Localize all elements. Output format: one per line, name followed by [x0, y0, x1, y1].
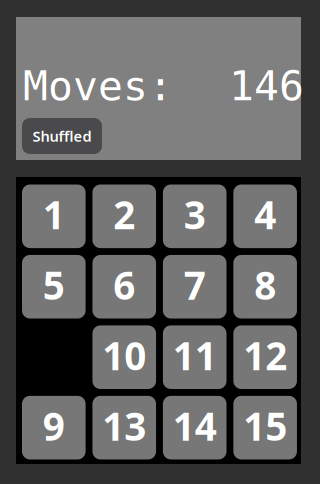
staticText: Shuffled	[32, 126, 91, 146]
staticText: 14	[173, 400, 217, 451]
staticText: 5	[43, 259, 65, 310]
button[interactable]: 12	[233, 325, 297, 389]
button[interactable]: 1	[22, 184, 86, 248]
staticText: 11	[173, 329, 217, 381]
button[interactable]: Shuffled	[22, 118, 102, 154]
staticText: 3	[184, 189, 206, 240]
staticText: 13	[102, 400, 146, 451]
staticText: 6	[113, 259, 135, 310]
button[interactable]: 5	[22, 255, 86, 318]
button[interactable]: 4	[233, 184, 297, 248]
button[interactable]: 2	[92, 184, 156, 248]
staticText: Moves:	[23, 62, 173, 109]
button[interactable]: 3	[163, 184, 226, 248]
button[interactable]: 15	[233, 396, 297, 459]
staticText: 10	[102, 329, 146, 381]
button[interactable]: 7	[163, 255, 226, 318]
staticText: 2	[113, 189, 135, 240]
staticText: 4	[254, 189, 276, 240]
staticText: 12	[243, 329, 287, 381]
button[interactable]: 8	[233, 255, 297, 318]
staticText: 15	[243, 400, 287, 451]
staticText: 7	[184, 259, 206, 310]
staticText: 146	[229, 62, 304, 109]
staticText: 1	[43, 189, 65, 240]
button[interactable]: 13	[92, 396, 156, 459]
button[interactable]: 14	[163, 396, 226, 459]
button[interactable]: 6	[92, 255, 156, 318]
staticText: 8	[254, 259, 276, 310]
staticText: 9	[43, 400, 65, 451]
button[interactable]: 9	[22, 396, 86, 459]
button[interactable]: 10	[92, 325, 156, 389]
button[interactable]: 11	[163, 325, 226, 389]
